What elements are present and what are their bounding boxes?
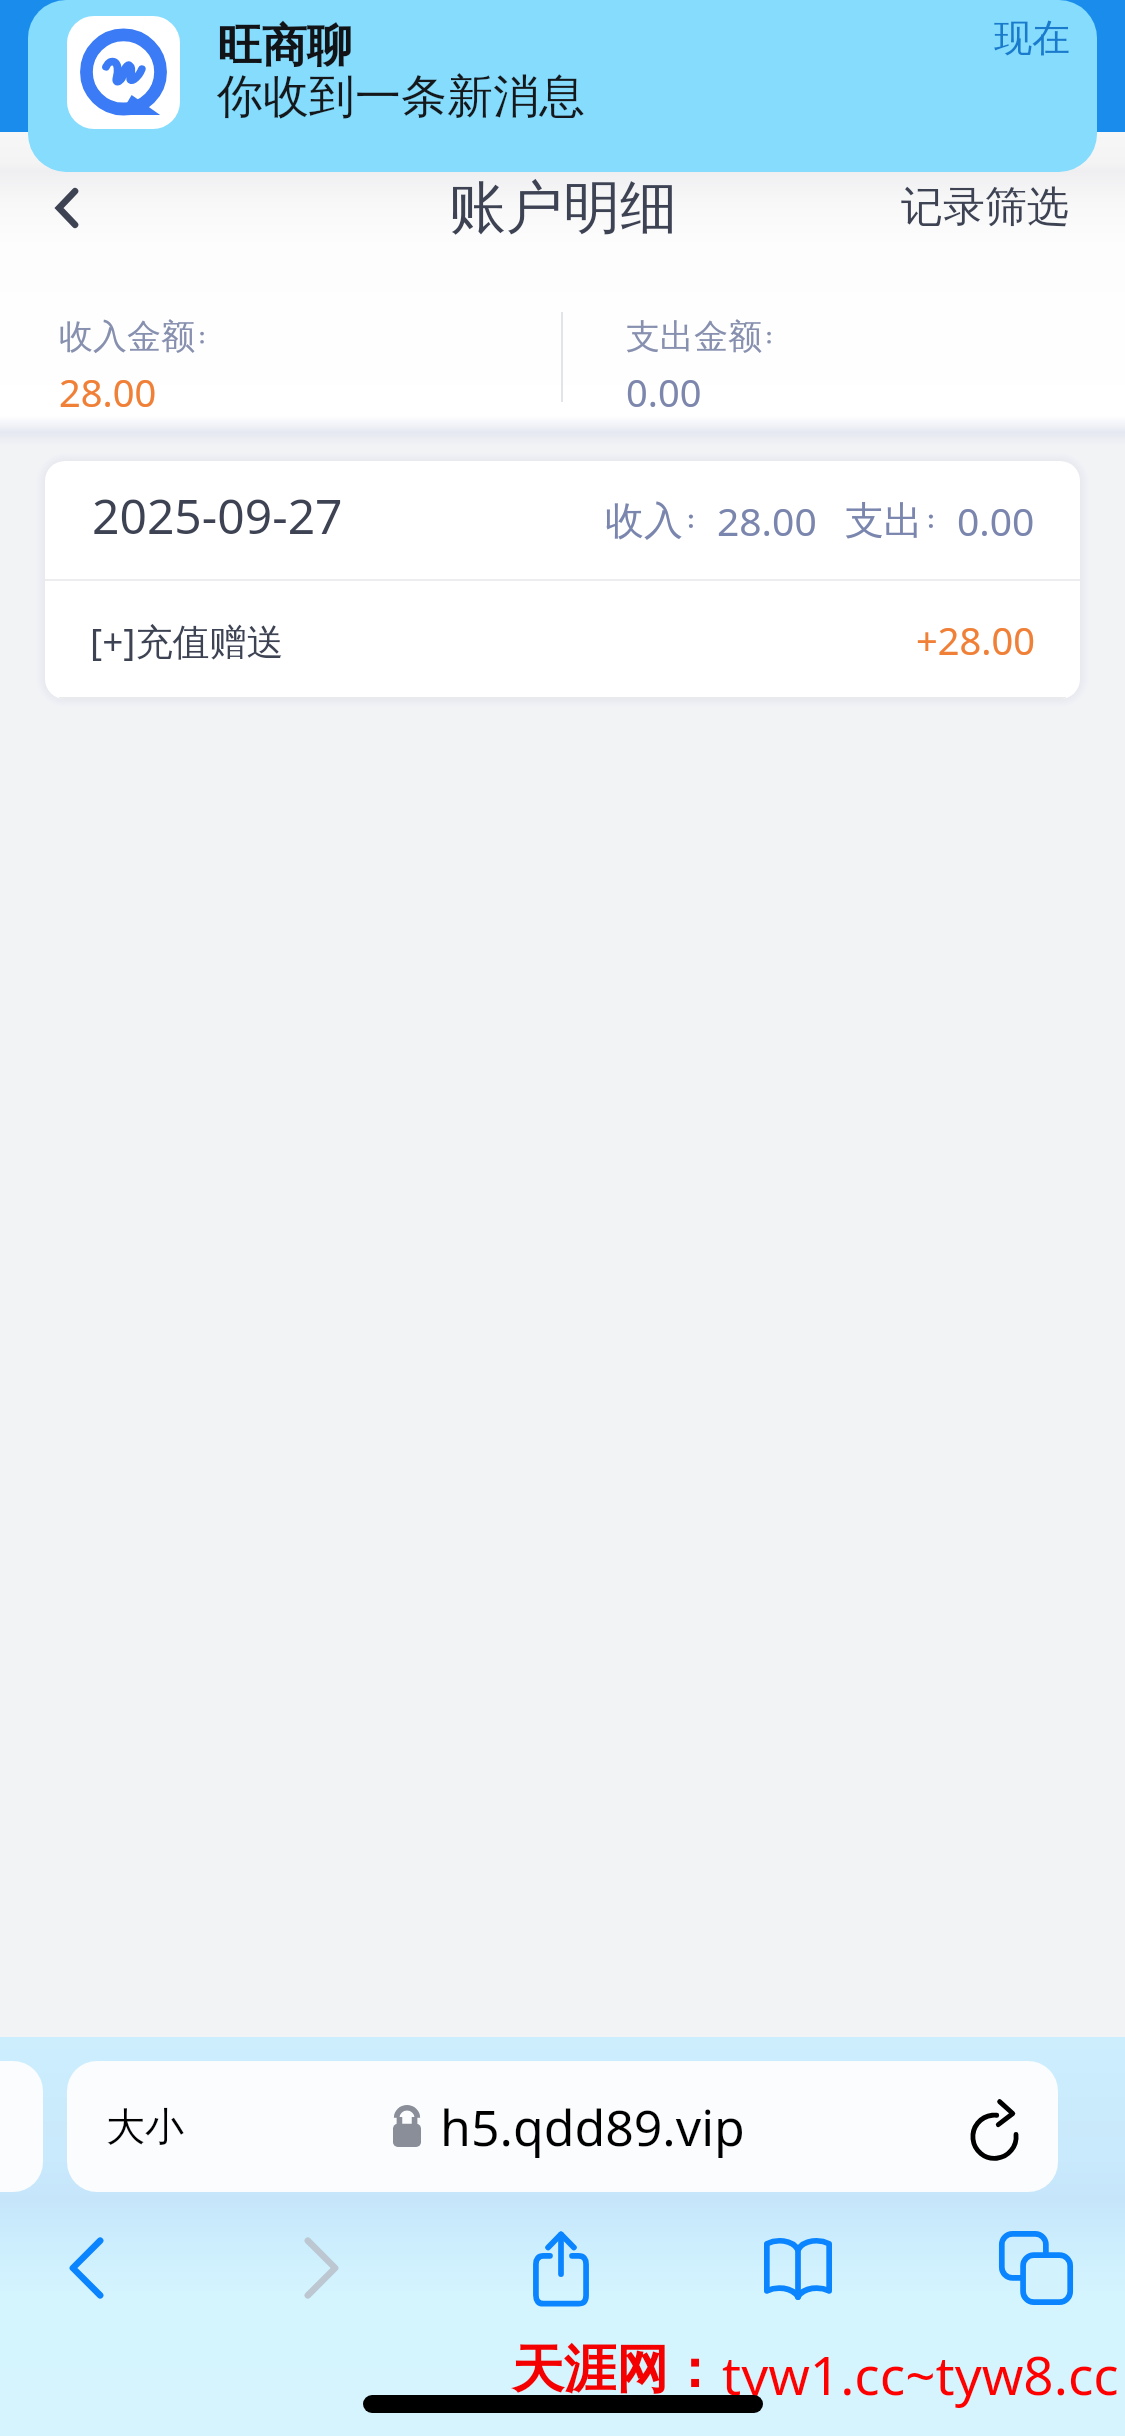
staticText: 28.00 [717, 494, 817, 547]
button[interactable]: Page settings [0, 2061, 43, 2192]
button[interactable]: 2025-09-27 [45, 461, 1080, 579]
staticText: 2025-09-27 [92, 483, 343, 548]
staticText: 收入金额 [59, 315, 195, 358]
button[interactable]: Reload [954, 2087, 1034, 2167]
staticText: 支出金额 [626, 315, 762, 358]
staticText: +28.00 [916, 614, 1035, 666]
staticText: 你收到一条新消息 [217, 68, 585, 126]
staticText: 大小 [106, 2102, 184, 2151]
button[interactable]: 旺商聊 [28, 0, 1097, 172]
staticText: 天涯网： [512, 2337, 720, 2403]
staticText: 0.00 [957, 494, 1035, 547]
button[interactable]: 大小 [67, 2061, 1058, 2192]
button[interactable]: [+]充值赠送 [45, 581, 1080, 699]
staticText: 支出 [845, 496, 923, 545]
staticText: 记录筛选 [901, 181, 1069, 234]
staticText: 旺商聊 [217, 18, 352, 75]
button[interactable]: Back [26, 2209, 144, 2327]
button[interactable]: Share [502, 2209, 620, 2327]
button[interactable]: Tabs [977, 2209, 1095, 2327]
button[interactable]: Back [0, 143, 130, 273]
staticText: tyw1.cc~tyw8.cc [722, 2338, 1119, 2410]
button[interactable]: Bookmarks [739, 2209, 857, 2327]
staticText: 收入 [605, 496, 683, 545]
button[interactable]: 记录筛选 [885, 163, 1085, 252]
staticText: 0.00 [626, 366, 702, 418]
staticText: 账户明细 [449, 172, 677, 244]
button[interactable]: Forward [264, 2209, 382, 2327]
staticText: [+]充值赠送 [90, 615, 284, 666]
staticText: h5.qdd89.vip [440, 2093, 745, 2161]
staticText: 28.00 [59, 366, 157, 418]
staticText: 现在 [994, 14, 1070, 62]
